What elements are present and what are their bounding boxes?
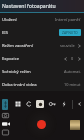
button[interactable]: Doba trvání videa bbox=[0, 78, 84, 91]
button[interactable]: Gallery bbox=[70, 120, 80, 130]
button[interactable]: Lock bbox=[49, 101, 56, 107]
button[interactable]: Scénický režim bbox=[0, 65, 84, 78]
staticText: Režim zaostření bbox=[2, 43, 60, 49]
button[interactable]: Record bbox=[37, 120, 46, 129]
staticText: 10 minut bbox=[64, 82, 81, 87]
button[interactable]: Camera settings bbox=[2, 99, 8, 110]
button[interactable]: Scene mode bbox=[36, 100, 44, 108]
staticText: Expozice bbox=[2, 56, 64, 62]
staticText: Doba trvání videa bbox=[2, 82, 64, 88]
staticText: Interní paměť bbox=[55, 17, 81, 22]
staticText: souvisle bbox=[60, 43, 75, 48]
button[interactable]: Flash bbox=[61, 101, 67, 107]
staticText: EIS bbox=[2, 30, 59, 36]
staticText: Automat. bbox=[64, 69, 81, 74]
button[interactable]: ZAPNUTO bbox=[59, 29, 81, 36]
staticText: Uložení bbox=[2, 17, 55, 23]
staticText: Nastavení fotoaparátu bbox=[2, 3, 56, 10]
button[interactable]: White balance bbox=[15, 101, 21, 107]
button[interactable]: Timer bbox=[26, 101, 32, 107]
button[interactable]: Video mode bbox=[2, 121, 10, 127]
button[interactable]: EIS bbox=[0, 26, 84, 39]
staticText: 0 bbox=[71, 56, 74, 61]
button[interactable]: Expozice bbox=[0, 52, 84, 65]
button[interactable]: More modes bbox=[2, 129, 9, 136]
button[interactable]: Photo mode bbox=[2, 112, 9, 119]
staticText: Scénický režim bbox=[2, 69, 64, 75]
button[interactable]: Uložení bbox=[0, 13, 84, 26]
staticText: ZAPNUTO bbox=[62, 30, 78, 35]
button[interactable]: Režim zaostření bbox=[0, 39, 84, 52]
button[interactable]: Back bbox=[76, 101, 82, 107]
